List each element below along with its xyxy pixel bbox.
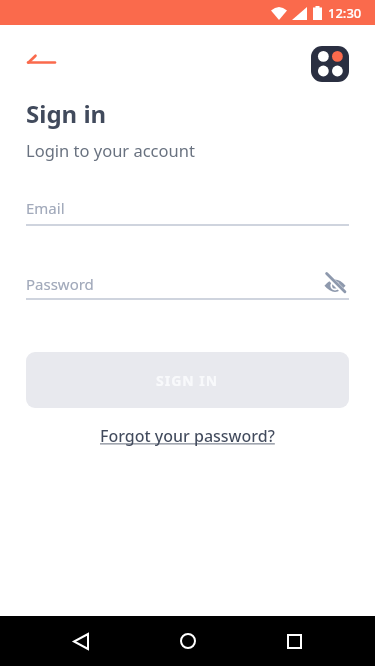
button[interactable]: Password bbox=[26, 273, 349, 300]
staticText: Password bbox=[26, 274, 94, 294]
button[interactable] bbox=[288, 635, 301, 648]
button[interactable]: Email bbox=[26, 198, 349, 226]
staticText: Sign in bbox=[26, 97, 107, 130]
button[interactable]: Forgot your password? bbox=[100, 425, 275, 447]
button[interactable] bbox=[74, 634, 88, 649]
button[interactable] bbox=[180, 633, 196, 649]
staticText: Email bbox=[26, 198, 65, 218]
button[interactable] bbox=[28, 53, 56, 65]
staticText: Login to your account bbox=[26, 139, 195, 161]
button[interactable] bbox=[311, 46, 349, 82]
staticText: SIGN IN bbox=[156, 371, 219, 390]
button[interactable] bbox=[324, 273, 346, 295]
staticText: 12:30 bbox=[328, 4, 362, 22]
